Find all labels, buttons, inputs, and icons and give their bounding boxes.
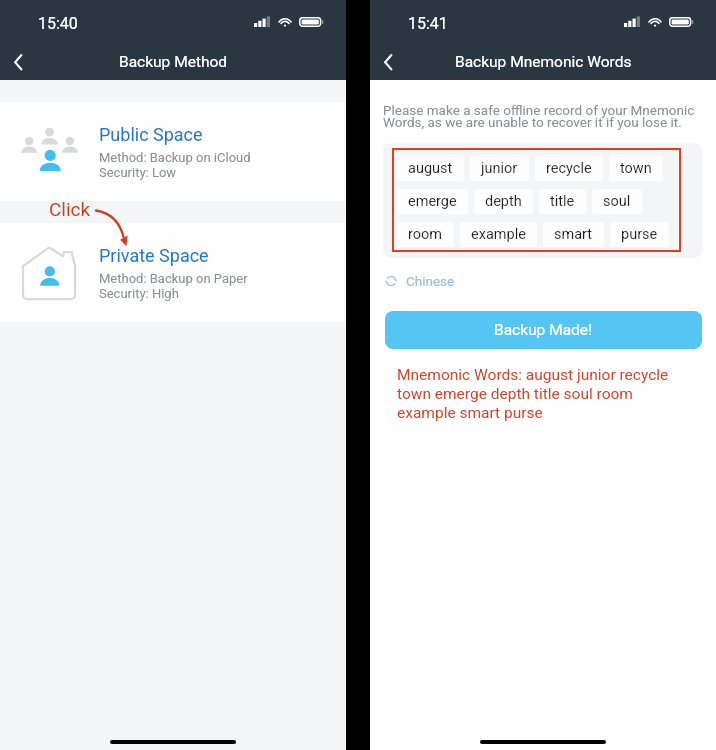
- button[interactable]: Chinese: [381, 269, 459, 293]
- button[interactable]: town: [609, 156, 663, 181]
- button[interactable]: purse: [610, 222, 669, 247]
- staticText: example: [471, 226, 526, 243]
- button[interactable]: Private Space: [0, 223, 346, 322]
- staticText: Please make a safe offline record of you…: [383, 102, 701, 131]
- staticText: Public Space: [99, 124, 203, 145]
- staticText: august: [408, 160, 453, 177]
- staticText: recycle: [546, 160, 592, 177]
- button[interactable]: emerge: [397, 189, 468, 214]
- button[interactable]: junior: [470, 156, 529, 181]
- staticText: Private Space: [99, 245, 209, 266]
- button[interactable]: example: [460, 222, 537, 247]
- staticText: emerge: [408, 193, 457, 210]
- button[interactable]: Backup Made!: [385, 311, 702, 349]
- button[interactable]: depth: [474, 189, 533, 214]
- staticText: 15:40: [38, 14, 78, 33]
- staticText: depth: [485, 193, 522, 210]
- staticText: Security: Low: [99, 165, 177, 180]
- staticText: Backup Method: [119, 53, 228, 71]
- button[interactable]: smart: [543, 222, 604, 247]
- button[interactable]: soul: [592, 189, 642, 214]
- button[interactable]: Back: [370, 46, 406, 80]
- staticText: Method: Backup on iCloud: [99, 150, 251, 165]
- staticText: Backup Mnemonic Words: [455, 53, 632, 71]
- staticText: Method: Backup on Paper: [99, 271, 248, 286]
- staticText: 15:41: [408, 14, 448, 33]
- staticText: town: [620, 160, 652, 177]
- staticText: Click: [49, 198, 91, 220]
- staticText: Chinese: [406, 273, 455, 289]
- button[interactable]: recycle: [535, 156, 603, 181]
- staticText: Mnemonic Words: august junior recycle to…: [397, 366, 680, 422]
- staticText: title: [550, 193, 575, 210]
- staticText: purse: [621, 226, 658, 243]
- staticText: Backup Made!: [494, 321, 593, 339]
- staticText: smart: [554, 226, 593, 243]
- button[interactable]: august: [397, 156, 464, 181]
- button[interactable]: Public Space: [0, 102, 346, 201]
- staticText: room: [408, 226, 443, 243]
- button[interactable]: title: [539, 189, 586, 214]
- staticText: junior: [481, 160, 518, 177]
- button[interactable]: room: [397, 222, 454, 247]
- staticText: Security: High: [99, 286, 179, 301]
- staticText: soul: [603, 193, 631, 210]
- button[interactable]: Back: [0, 46, 36, 80]
